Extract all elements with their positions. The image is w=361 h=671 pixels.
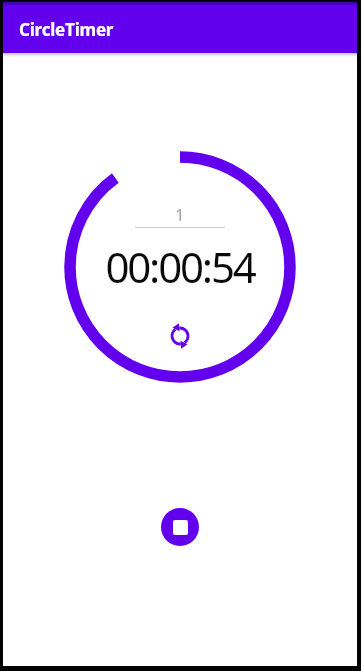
button[interactable] [166, 322, 194, 350]
staticText: 00:00:54 [105, 238, 255, 295]
staticText: CircleTimer [19, 18, 114, 41]
button[interactable]: 1 [135, 203, 225, 226]
button[interactable] [161, 508, 199, 546]
staticText: 1 [175, 203, 185, 226]
